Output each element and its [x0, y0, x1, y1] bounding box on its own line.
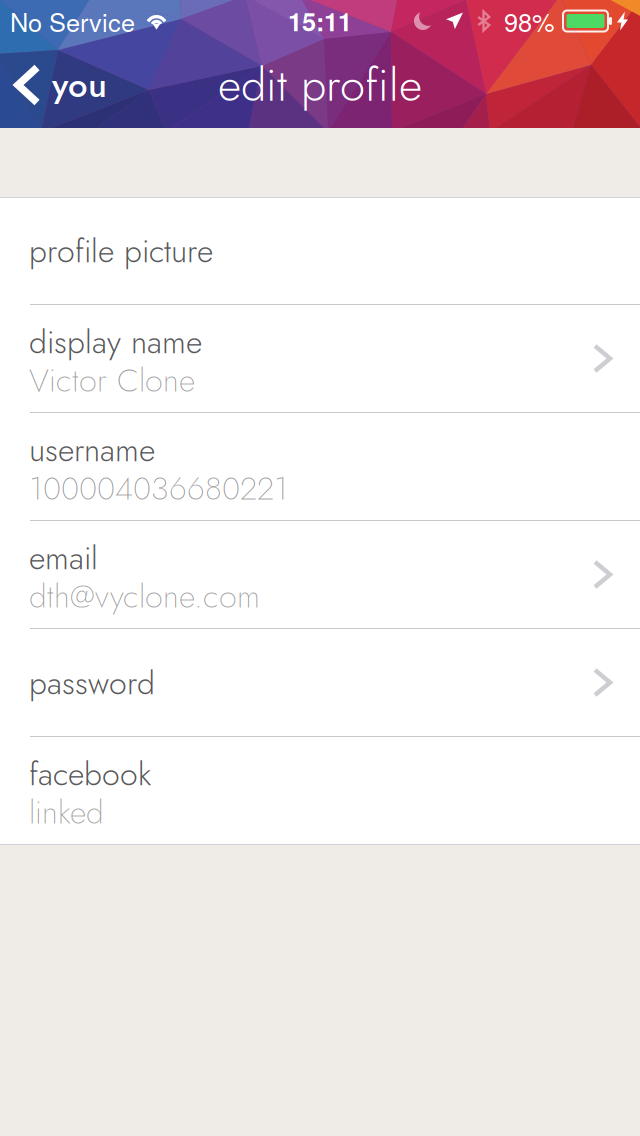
staticText: dth@vyclone.com	[29, 573, 260, 619]
button[interactable]: profile picture	[0, 198, 640, 304]
staticText: facebook	[29, 751, 151, 797]
staticText: No Service	[10, 3, 135, 39]
staticText: edit profile	[218, 52, 422, 118]
button[interactable]: display name	[0, 305, 640, 412]
staticText: 100004036680221	[29, 465, 288, 511]
staticText: 98%	[504, 3, 555, 39]
staticText: linked	[29, 789, 104, 835]
staticText: you	[52, 60, 107, 110]
button[interactable]: facebook	[0, 737, 640, 844]
staticText: 15:11	[288, 3, 352, 39]
staticText: display name	[29, 319, 202, 365]
button[interactable]: username	[0, 413, 640, 520]
button[interactable]: password	[0, 629, 640, 736]
staticText: Victor Clone	[29, 357, 195, 403]
staticText: username	[29, 427, 155, 473]
staticText: profile picture	[29, 228, 213, 274]
staticText: password	[29, 660, 155, 706]
button[interactable]: email	[0, 521, 640, 628]
button[interactable]: you	[0, 42, 123, 128]
staticText: email	[29, 535, 98, 581]
